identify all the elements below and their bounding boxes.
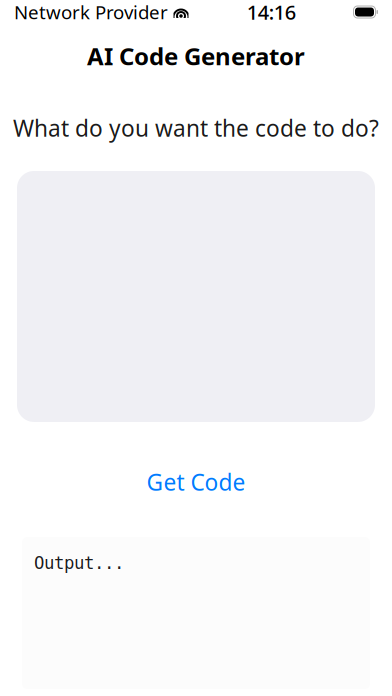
staticText: Get Code (146, 467, 245, 497)
staticText: Output... (34, 553, 124, 573)
staticText: AI Code Generator (87, 40, 305, 72)
staticText: Network Provider (14, 0, 168, 24)
staticText: What do you want the code to do? (13, 113, 379, 143)
button[interactable]: Get Code (126, 459, 265, 505)
staticText: 14:16 (247, 0, 296, 25)
